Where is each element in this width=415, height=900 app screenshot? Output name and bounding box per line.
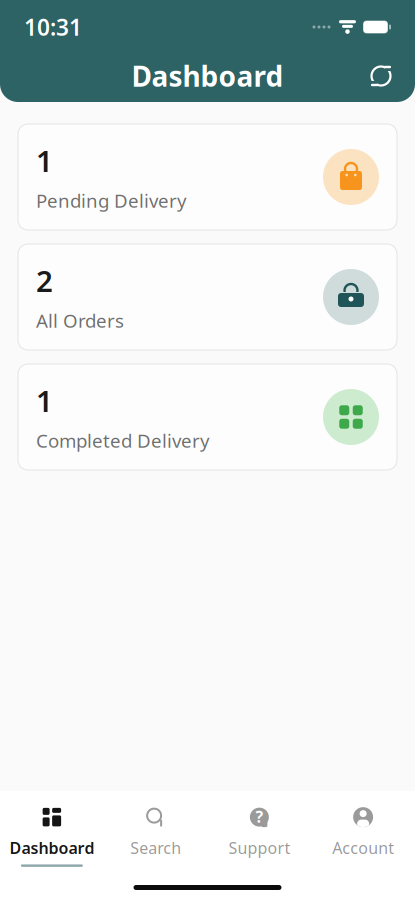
staticText: Account xyxy=(332,837,394,858)
button[interactable]: 2 xyxy=(18,244,397,350)
staticText: 1 xyxy=(36,381,53,420)
button[interactable]: 1 xyxy=(18,124,397,230)
staticText: Support xyxy=(228,837,290,858)
staticText: Search xyxy=(130,837,181,858)
staticText: Pending Delivery xyxy=(36,188,187,213)
button[interactable]: Dashboard xyxy=(0,805,104,867)
button[interactable]: Refresh xyxy=(359,54,403,98)
staticText: Dashboard xyxy=(9,837,94,858)
staticText: Dashboard xyxy=(131,57,283,95)
button[interactable]: 1 xyxy=(18,364,397,470)
staticText: 10:31 xyxy=(24,12,82,42)
button[interactable]: Search xyxy=(104,805,208,867)
staticText: 2 xyxy=(36,261,53,300)
staticText: Completed Delivery xyxy=(36,428,210,453)
button[interactable]: ? xyxy=(207,805,311,867)
staticText: 1 xyxy=(36,141,53,180)
staticText: ? xyxy=(255,806,263,827)
button[interactable]: Account xyxy=(311,805,415,867)
staticText: All Orders xyxy=(36,308,124,333)
